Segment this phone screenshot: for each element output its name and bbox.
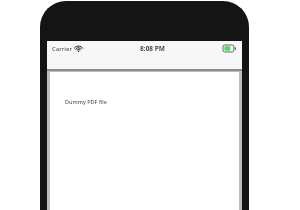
other: Wi-Fi signal: [75, 46, 82, 52]
button[interactable]: Dummy PDF file: [50, 72, 239, 210]
staticText: 8:08 PM: [140, 44, 165, 53]
staticText: Dummy PDF file: [65, 98, 108, 105]
staticText: Carrier: [52, 45, 72, 53]
other: Battery level: [223, 45, 237, 52]
